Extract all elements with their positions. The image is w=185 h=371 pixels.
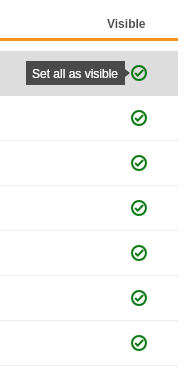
button[interactable]: Toggle row visibility [0, 96, 178, 141]
button[interactable]: Visible [107, 17, 146, 30]
button[interactable]: Toggle row visibility [0, 51, 178, 96]
staticText: Set all as visible [32, 67, 119, 80]
button[interactable]: Toggle row visibility [0, 141, 178, 186]
button[interactable]: Toggle row visibility [0, 276, 178, 321]
button[interactable]: Toggle row visibility [0, 231, 178, 276]
staticText: Visible [107, 17, 146, 30]
button[interactable]: Toggle row visibility [0, 321, 178, 366]
button[interactable]: Toggle row visibility [0, 186, 178, 231]
